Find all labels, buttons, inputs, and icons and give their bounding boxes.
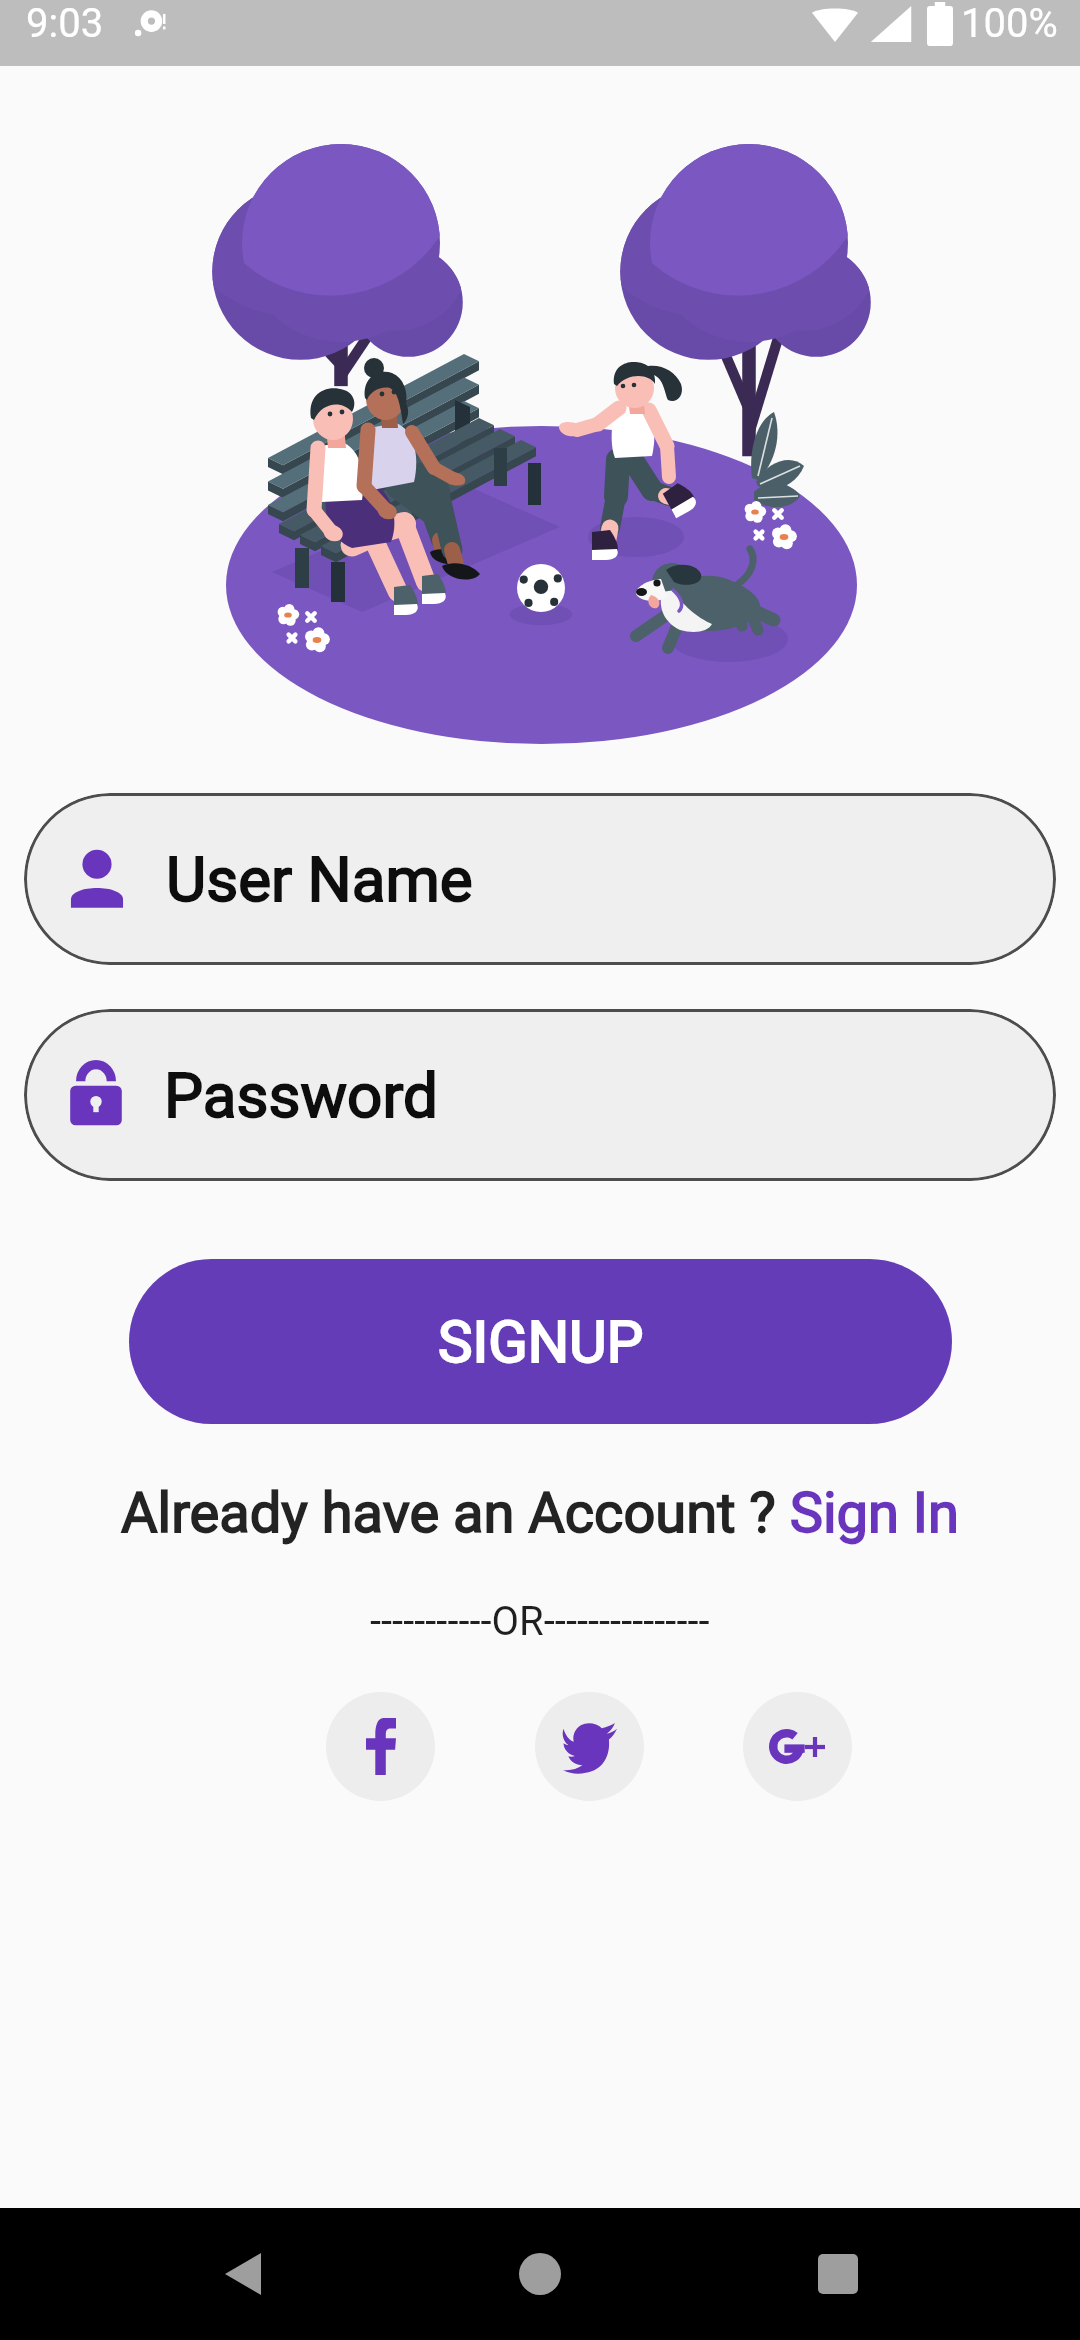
button[interactable]: Back [188, 2219, 298, 2329]
button[interactable]: User Name [24, 793, 1056, 965]
button[interactable]: Home [485, 2219, 595, 2329]
button[interactable]: Already have an Account ? Sign In [121, 1480, 960, 1546]
staticText: User Name [166, 843, 473, 916]
staticText: SIGNUP [438, 1308, 644, 1376]
staticText: 9:03 [26, 0, 104, 47]
staticText: -----------OR--------------- [370, 1598, 710, 1645]
staticText: 100% [961, 0, 1058, 47]
button[interactable]: Sign in with Facebook [326, 1692, 435, 1801]
button[interactable]: Password [24, 1009, 1056, 1181]
button[interactable]: SIGNUP [129, 1259, 952, 1424]
button[interactable]: Sign in with Google [743, 1692, 852, 1801]
staticText: Already have an Account ? Sign In [121, 1480, 960, 1546]
staticText: Password [164, 1059, 438, 1132]
button[interactable]: Sign in with Twitter [535, 1692, 644, 1801]
button[interactable]: Recent apps [783, 2219, 893, 2329]
